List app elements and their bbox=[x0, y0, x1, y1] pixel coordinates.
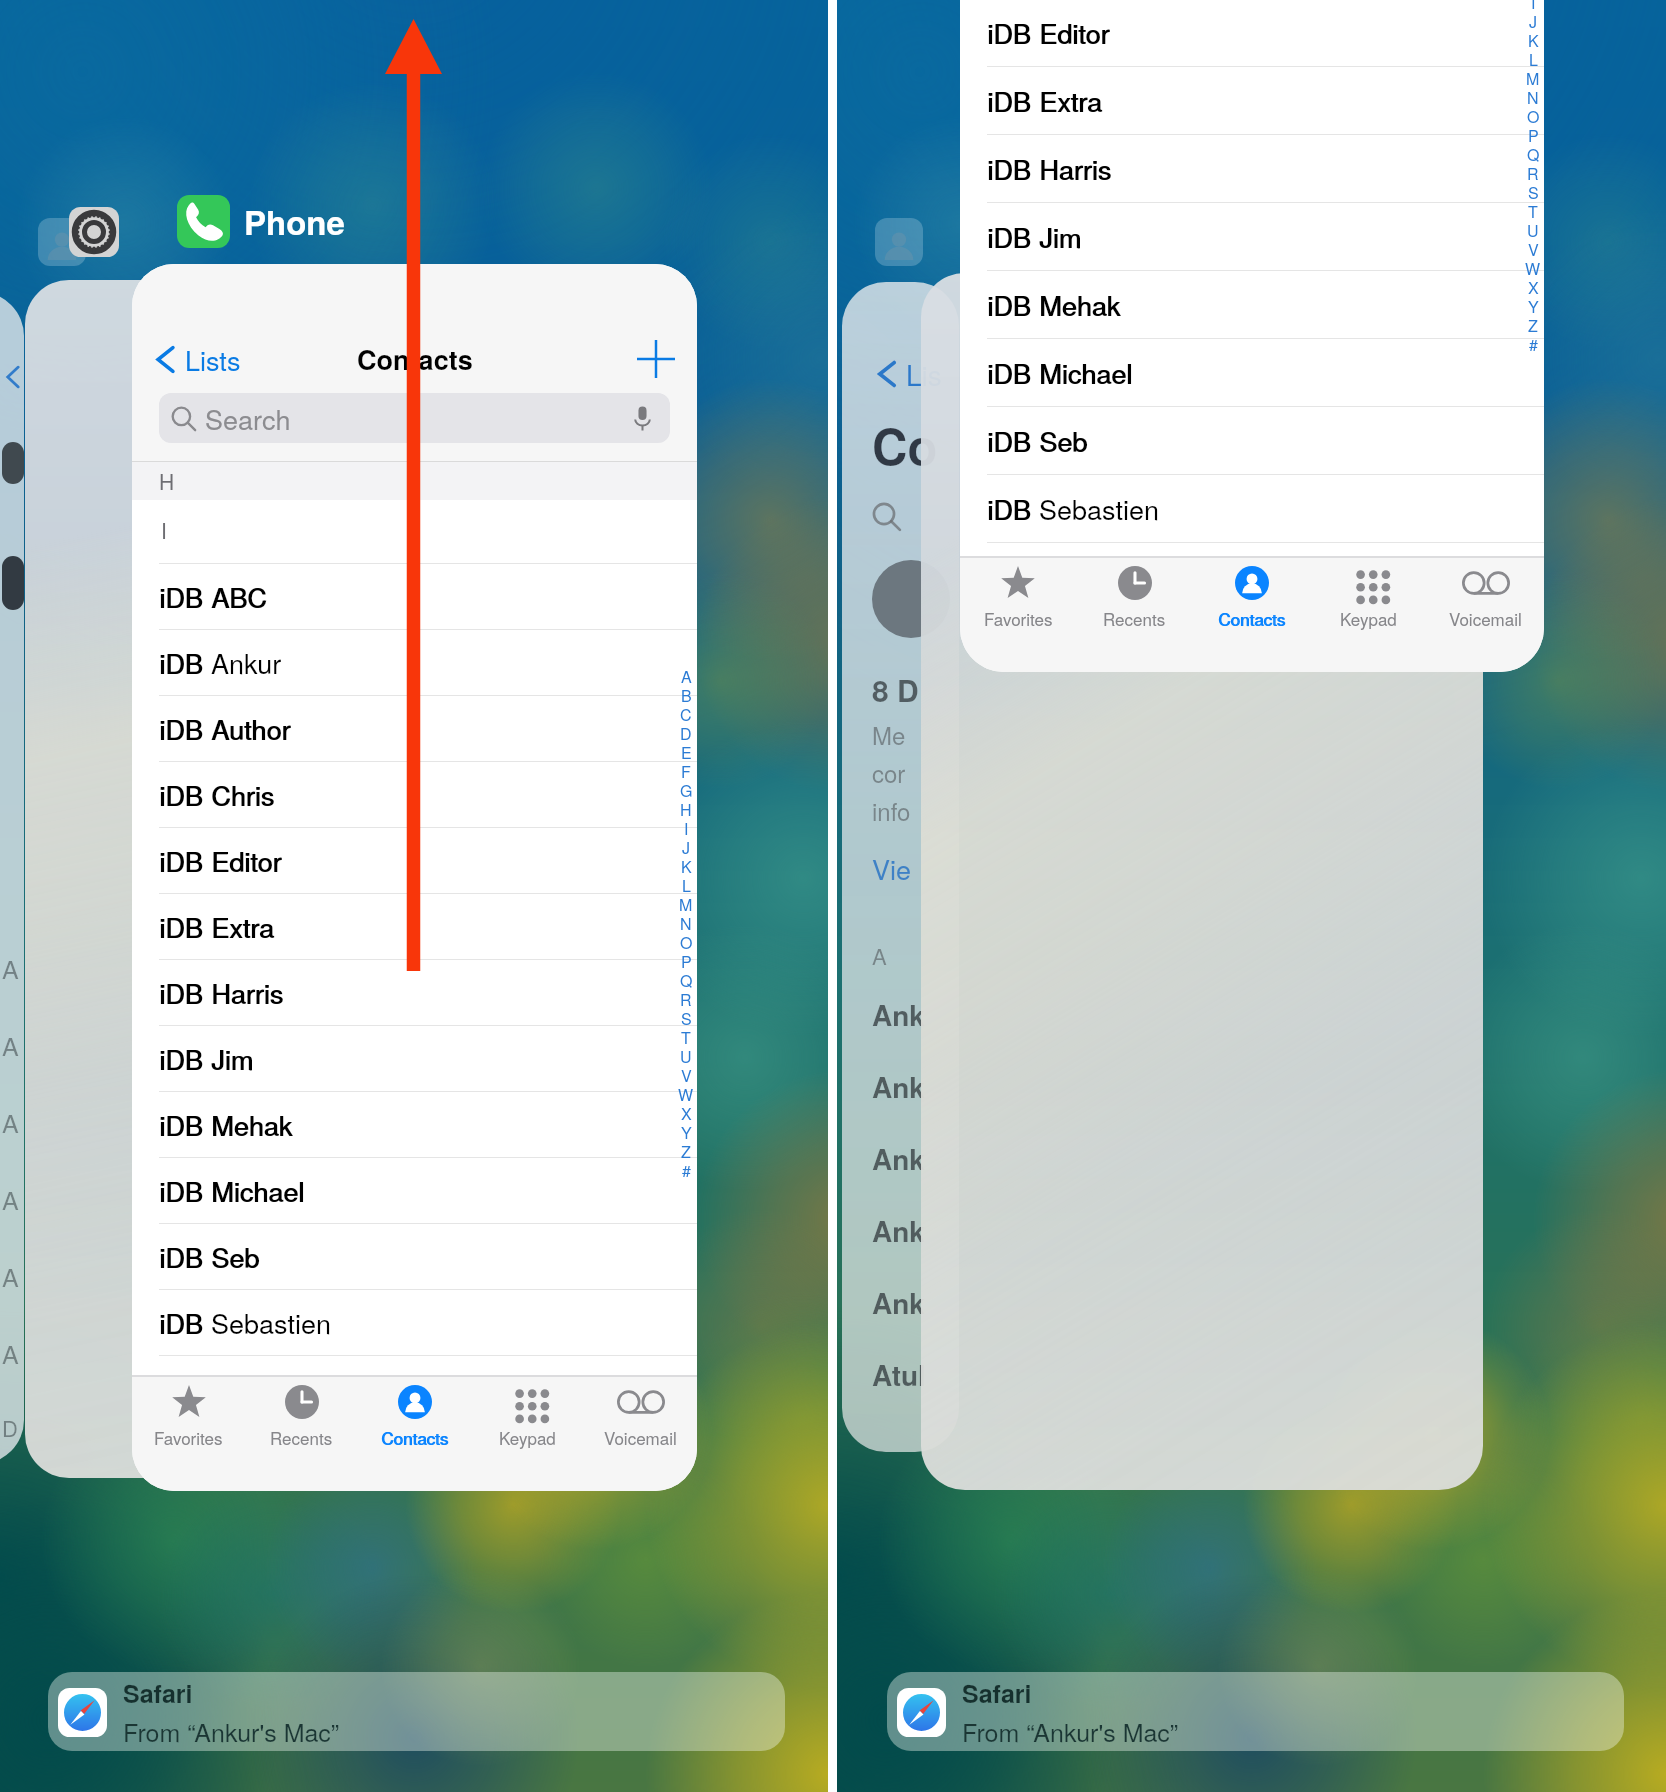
button[interactable]: Lists bbox=[140, 330, 251, 388]
button[interactable]: Keypad bbox=[1310, 558, 1427, 672]
button[interactable]: iDB bbox=[960, 135, 1544, 203]
staticText: L bbox=[1529, 48, 1538, 67]
staticText: info bbox=[872, 793, 911, 827]
staticText: Mehak bbox=[1040, 285, 1122, 324]
staticText: iDB bbox=[988, 285, 1040, 324]
button[interactable]: iDB bbox=[132, 1224, 697, 1290]
staticText: Editor bbox=[1040, 13, 1111, 52]
staticText: K bbox=[1528, 29, 1539, 48]
staticText: L bbox=[682, 874, 691, 893]
staticText: A bbox=[2, 1181, 19, 1217]
button[interactable]: iDB bbox=[960, 339, 1544, 407]
button[interactable]: Favorites bbox=[132, 1377, 245, 1491]
button[interactable]: iDB bbox=[960, 475, 1544, 543]
button[interactable]: iDB bbox=[960, 271, 1544, 339]
staticText: iDB bbox=[987, 81, 1039, 120]
staticText: Sebastien bbox=[1039, 489, 1159, 528]
staticText: E bbox=[681, 741, 692, 760]
staticText: Lis bbox=[906, 354, 942, 394]
staticText: Editor bbox=[211, 841, 282, 880]
button[interactable]: Recents bbox=[1076, 558, 1193, 672]
button[interactable]: iDB bbox=[132, 1158, 697, 1224]
button[interactable]: iDB bbox=[960, 407, 1544, 475]
staticText: Atul bbox=[872, 1354, 926, 1394]
staticText: Ank bbox=[872, 1066, 925, 1106]
staticText: ABC bbox=[212, 577, 268, 616]
staticText: Contacts bbox=[357, 340, 473, 379]
button[interactable]: iDB bbox=[132, 894, 697, 960]
staticText: N bbox=[680, 912, 692, 931]
staticText: Favorites bbox=[984, 606, 1053, 630]
staticText: iDB bbox=[159, 841, 211, 880]
staticText: iDB bbox=[160, 907, 212, 946]
staticText: Editor bbox=[212, 841, 283, 880]
button[interactable]: iDB bbox=[132, 960, 697, 1026]
staticText: U bbox=[1527, 219, 1539, 238]
button[interactable]: Safari bbox=[48, 1672, 785, 1751]
staticText: iDB bbox=[159, 1171, 211, 1210]
button[interactable]: Voicemail bbox=[584, 1377, 697, 1491]
staticText: Z bbox=[681, 1140, 691, 1159]
staticText: Harris bbox=[211, 973, 283, 1012]
staticText: Extra bbox=[211, 907, 274, 946]
staticText: iDB bbox=[160, 1039, 212, 1078]
staticText: iDB bbox=[988, 217, 1040, 256]
staticText: ABC bbox=[211, 577, 267, 616]
staticText: I bbox=[161, 515, 167, 545]
button[interactable]: Safari bbox=[887, 1672, 1624, 1751]
button[interactable]: Settings app bbox=[69, 207, 119, 257]
button[interactable]: iDB bbox=[132, 564, 697, 630]
staticText: iDB bbox=[160, 1303, 212, 1342]
staticText: Jim bbox=[211, 1039, 253, 1078]
staticText: Recents bbox=[270, 1425, 333, 1449]
button[interactable]: Contacts app bbox=[38, 218, 86, 266]
staticText: iDB bbox=[160, 709, 212, 748]
staticText: iDB bbox=[159, 1105, 211, 1144]
staticText: Contacts bbox=[382, 1425, 450, 1449]
staticText: Favorites bbox=[154, 1425, 223, 1449]
staticText: Harris bbox=[212, 973, 284, 1012]
staticText: iDB bbox=[159, 1237, 211, 1276]
button[interactable]: Contacts bbox=[1193, 558, 1310, 672]
button[interactable]: iDB bbox=[132, 1290, 697, 1356]
staticText: G bbox=[680, 779, 693, 798]
button[interactable]: iDB bbox=[132, 630, 697, 696]
staticText: K bbox=[681, 855, 692, 874]
staticText: M bbox=[1526, 67, 1540, 86]
button[interactable]: Phone app bbox=[177, 195, 230, 248]
staticText: Contacts bbox=[1218, 606, 1286, 630]
staticText: iDB bbox=[988, 149, 1040, 188]
button[interactable]: Recents bbox=[245, 1377, 358, 1491]
staticText: 8 D bbox=[872, 668, 919, 711]
staticText: Z bbox=[1528, 314, 1538, 333]
button[interactable]: iDB bbox=[960, 203, 1544, 271]
button[interactable]: iDB bbox=[132, 1092, 697, 1158]
button[interactable]: Search bbox=[159, 393, 670, 443]
staticText: A bbox=[2, 1027, 19, 1063]
staticText: iDB bbox=[159, 973, 211, 1012]
staticText: From “Ankur's Mac” bbox=[962, 1713, 1179, 1749]
staticText: Ank bbox=[872, 1138, 925, 1178]
staticText: N bbox=[1527, 86, 1539, 105]
button[interactable]: iDB bbox=[960, 0, 1544, 67]
button[interactable]: Add contact bbox=[615, 330, 697, 388]
button[interactable]: iDB bbox=[132, 762, 697, 828]
staticText: Keypad bbox=[1340, 606, 1397, 630]
button[interactable]: iDB bbox=[132, 696, 697, 762]
staticText: iDB bbox=[987, 285, 1039, 324]
button[interactable]: Favorites bbox=[960, 558, 1076, 672]
button[interactable]: iDB bbox=[132, 828, 697, 894]
staticText: From “Ankur's Mac” bbox=[123, 1713, 340, 1749]
staticText: A bbox=[2, 1258, 19, 1294]
button[interactable]: iDB bbox=[960, 67, 1544, 135]
button[interactable]: Contacts bbox=[358, 1377, 471, 1491]
staticText: iDB bbox=[160, 775, 212, 814]
button[interactable]: Voicemail bbox=[1427, 558, 1544, 672]
staticText: T bbox=[681, 1026, 691, 1045]
staticText: J bbox=[682, 836, 691, 855]
staticText: Michael bbox=[1039, 353, 1133, 392]
staticText: Voicemail bbox=[1449, 606, 1522, 630]
button[interactable]: Keypad bbox=[471, 1377, 584, 1491]
button[interactable]: iDB bbox=[132, 1026, 697, 1092]
staticText: Seb bbox=[212, 1237, 261, 1276]
